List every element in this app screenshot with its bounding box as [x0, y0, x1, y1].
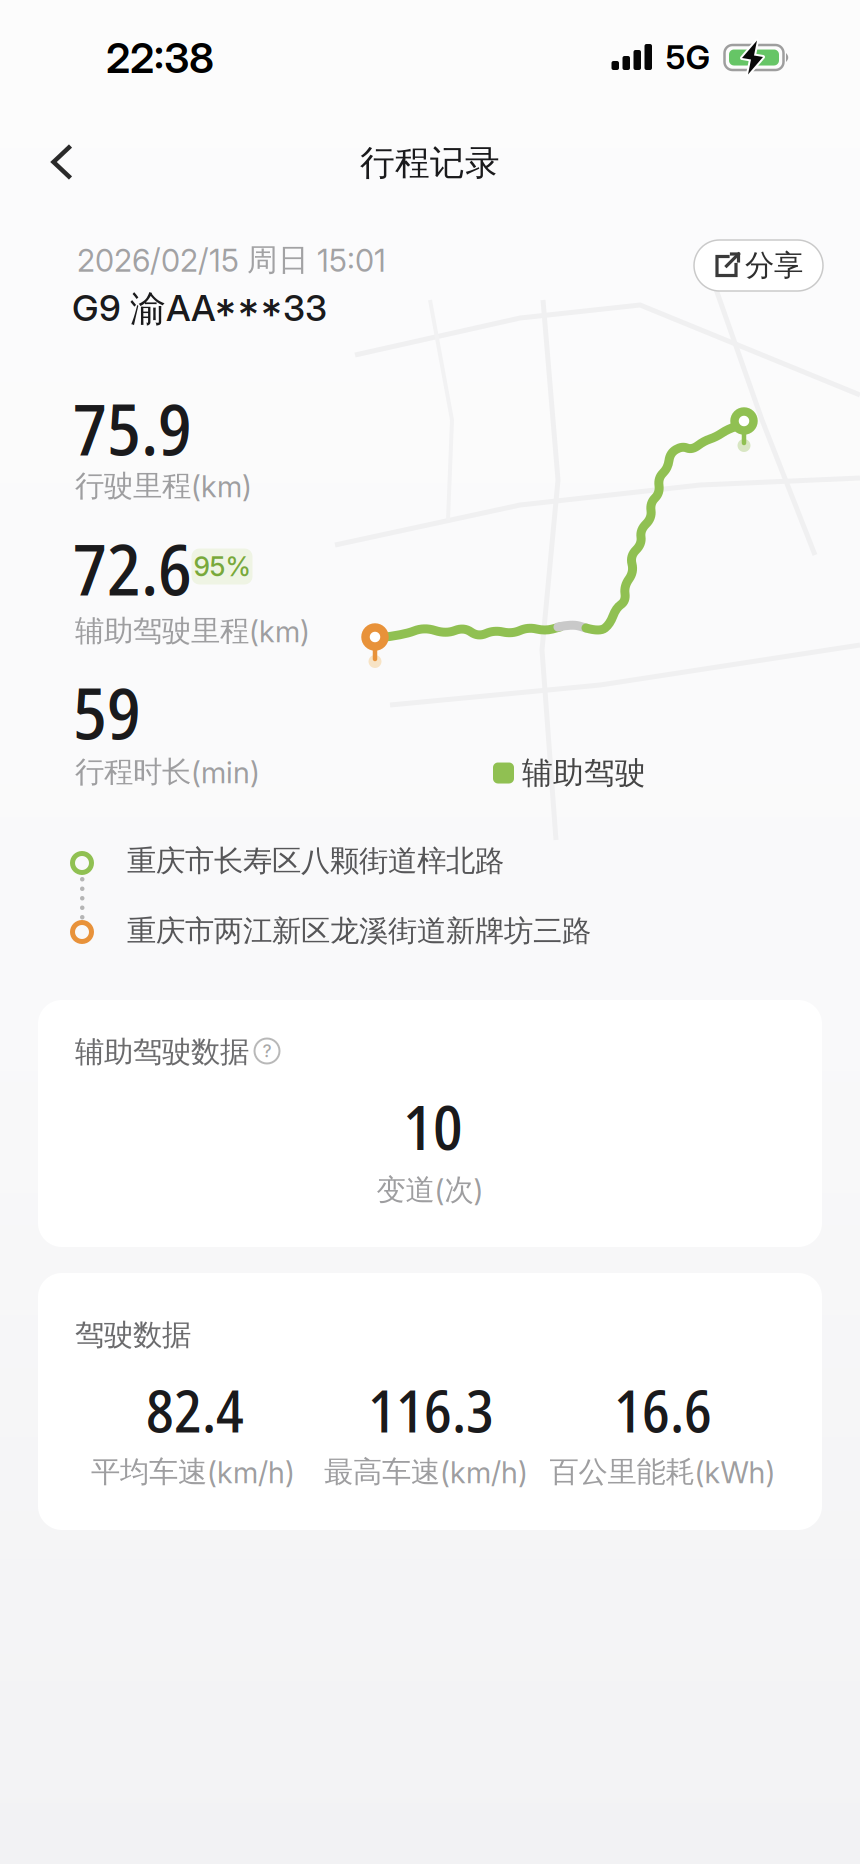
staticText: 95%	[193, 551, 250, 582]
staticText: 59	[73, 664, 141, 760]
staticText: 行程时长(min)	[75, 754, 260, 790]
staticText: ?	[262, 1041, 271, 1061]
staticText: 变道(次)	[376, 1172, 483, 1208]
staticText: 辅助驾驶里程(km)	[75, 613, 310, 649]
staticText: 重庆市两江新区龙溪街道新牌坊三路	[127, 913, 591, 949]
staticText: 72.6	[73, 520, 192, 616]
staticText: 重庆市长寿区八颗街道梓北路	[127, 843, 504, 879]
staticText: 辅助驾驶数据	[75, 1034, 249, 1070]
staticText: 16.6	[614, 1370, 712, 1449]
button[interactable]: 返回	[37, 130, 86, 194]
staticText: 行驶里程(km)	[75, 468, 252, 504]
staticText: 2026/02/15 周日 15:01	[77, 241, 386, 279]
staticText: 5G	[665, 37, 710, 77]
staticText: 行程记录	[360, 142, 500, 184]
staticText: 百公里能耗(kWh)	[549, 1454, 775, 1490]
staticText: G9 渝AA***33	[72, 287, 327, 331]
staticText: 辅助驾驶	[522, 754, 646, 792]
staticText: 最高车速(km/h)	[324, 1454, 528, 1490]
staticText: 驾驶数据	[75, 1317, 191, 1353]
staticText: 分享	[745, 247, 803, 283]
staticText: 22:38	[106, 34, 214, 82]
staticText: 平均车速(km/h)	[91, 1454, 295, 1490]
staticText: 82.4	[146, 1370, 244, 1449]
staticText: 10	[403, 1084, 463, 1168]
button[interactable]: 帮助	[254, 1038, 279, 1063]
staticText: 75.9	[73, 380, 192, 476]
button[interactable]: 分享	[694, 240, 823, 291]
staticText: 116.3	[368, 1370, 494, 1449]
